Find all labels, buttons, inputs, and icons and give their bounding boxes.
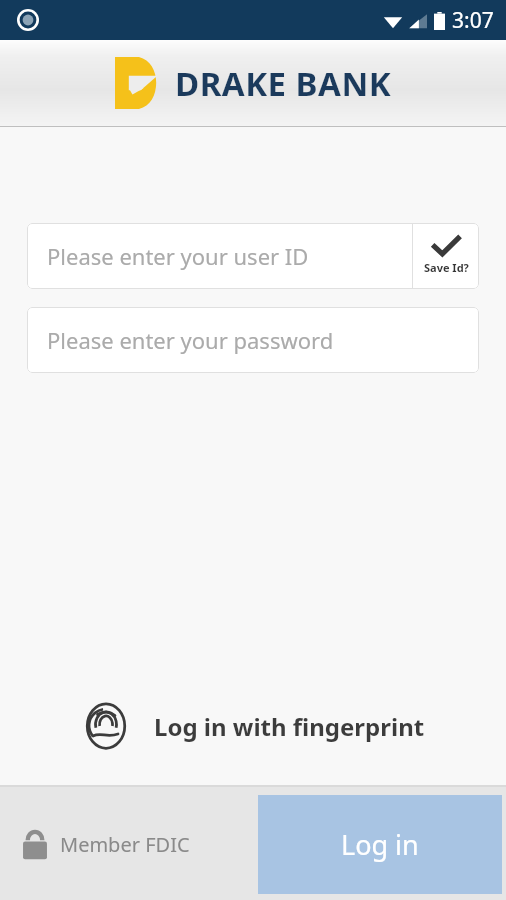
button[interactable]: Member FDIC [22,828,190,860]
button[interactable]: Save Id [413,223,479,289]
button[interactable]: Log in [258,795,502,894]
staticText: Please enter your password [47,325,334,355]
staticText: 3:07 [452,6,494,35]
staticText: Log in [341,826,419,863]
button[interactable]: Please enter your password [27,307,479,373]
staticText: Log in with fingerprint [154,710,425,743]
button[interactable]: Log in with fingerprint [0,701,506,751]
staticText: Member FDIC [60,831,190,858]
button[interactable]: Please enter your user ID [27,223,412,289]
staticText: Please enter your user ID [47,241,309,271]
staticText: DRAKE BANK [175,61,392,106]
staticText: Save Id? [424,260,469,275]
